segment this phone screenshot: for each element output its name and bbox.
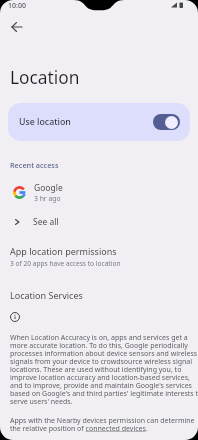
staticText: Apps with the Nearby devices permission … [10, 416, 195, 433]
staticText: See all [33, 216, 59, 228]
staticText: App location permissions [10, 245, 117, 257]
staticText: Google [34, 182, 63, 194]
staticText: When Location Accuracy is on, apps and s… [10, 333, 198, 406]
button[interactable]: See all [0, 212, 198, 232]
staticText: Location Services [10, 289, 83, 301]
button[interactable] [6, 20, 28, 34]
staticText: Location [10, 66, 80, 90]
button[interactable]: App location permissions [0, 245, 198, 268]
staticText: 10:00 [8, 1, 26, 11]
button[interactable]: Google [0, 180, 198, 204]
button[interactable]: Location Services [0, 286, 198, 304]
staticText: Recent access [10, 160, 59, 170]
staticText: 3 of 20 apps have access to location [10, 259, 121, 268]
staticText: Use location [19, 116, 71, 128]
button[interactable]: Use location [8, 103, 190, 141]
staticText: 3 hr ago [34, 194, 61, 203]
